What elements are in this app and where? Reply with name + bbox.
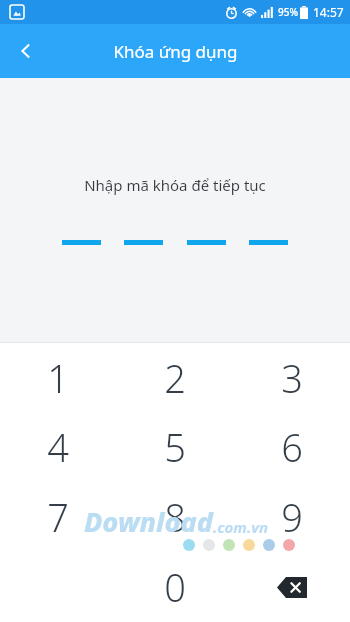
- staticText: 1: [47, 352, 69, 404]
- button[interactable]: 2: [116, 343, 233, 412]
- staticText: 0: [164, 561, 186, 613]
- button[interactable]: 5: [116, 412, 233, 482]
- staticText: Khóa ứng dụng: [113, 40, 238, 63]
- staticText: 5: [164, 421, 186, 473]
- staticText: 9: [281, 491, 303, 543]
- staticText: 2: [164, 352, 186, 404]
- button[interactable]: 0: [116, 552, 233, 622]
- staticText: 95%: [278, 5, 298, 19]
- button[interactable]: 3: [233, 343, 350, 412]
- button[interactable]: 7: [0, 482, 116, 552]
- button[interactable]: 8: [116, 482, 233, 552]
- staticText: 8: [164, 491, 186, 543]
- button[interactable]: 4: [0, 412, 116, 482]
- staticText: 7: [47, 491, 69, 543]
- staticText: Download: [84, 503, 213, 540]
- staticText: 3: [281, 352, 303, 404]
- button[interactable]: 6: [233, 412, 350, 482]
- button[interactable]: Back: [0, 24, 52, 78]
- staticText: 14:57: [313, 4, 344, 20]
- staticText: Nhập mã khóa để tiếp tục: [84, 175, 266, 195]
- button[interactable]: 9: [233, 482, 350, 552]
- staticText: 4: [47, 421, 69, 473]
- button[interactable]: Backspace: [233, 552, 350, 622]
- staticText: .com.vn: [213, 517, 268, 537]
- staticText: 6: [281, 421, 303, 473]
- button[interactable]: 1: [0, 343, 116, 412]
